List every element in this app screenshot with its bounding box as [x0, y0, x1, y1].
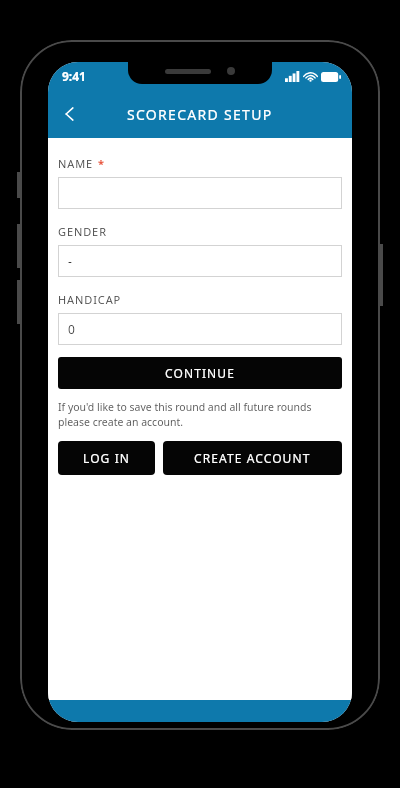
- button[interactable]: 0: [58, 313, 342, 345]
- staticText: LOG IN: [83, 450, 131, 466]
- staticText: HANDICAP: [58, 292, 122, 307]
- staticText: CONTINUE: [165, 365, 235, 381]
- staticText: NAME: [58, 156, 94, 171]
- button[interactable]: CREATE ACCOUNT: [163, 441, 342, 475]
- button[interactable]: LOG IN: [58, 441, 155, 475]
- staticText: 9:41: [62, 68, 86, 84]
- staticText: If you'd like to save this round and all…: [58, 400, 342, 429]
- staticText: 0: [68, 321, 75, 337]
- button[interactable]: [58, 177, 342, 209]
- button[interactable]: -: [58, 245, 342, 277]
- staticText: *: [98, 156, 104, 171]
- staticText: -: [68, 253, 72, 269]
- staticText: GENDER: [58, 224, 107, 239]
- button[interactable]: Back: [48, 92, 92, 136]
- button[interactable]: CONTINUE: [58, 357, 342, 389]
- staticText: CREATE ACCOUNT: [194, 450, 311, 466]
- staticText: SCORECARD SETUP: [127, 105, 273, 124]
